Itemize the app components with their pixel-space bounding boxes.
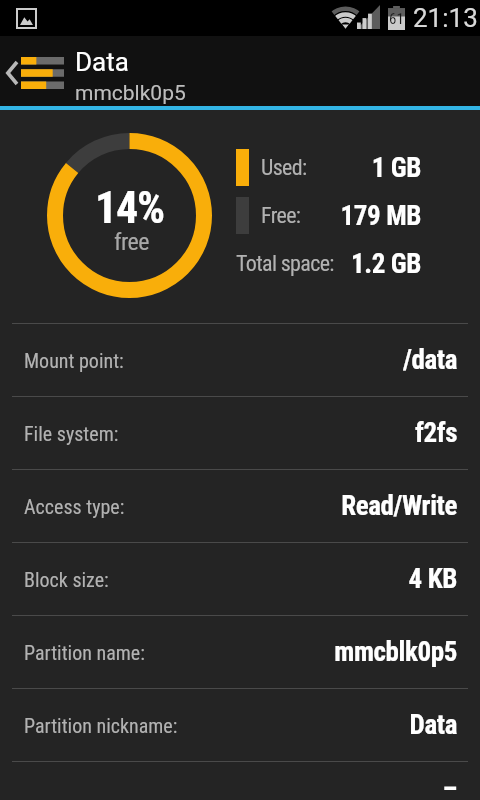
staticText: mmcblk0p5 xyxy=(334,636,457,668)
button[interactable]: Access type: xyxy=(0,470,480,542)
button[interactable]: Partition nickname: xyxy=(0,689,480,761)
staticText: 21:13 xyxy=(413,3,478,33)
staticText: 4 KB xyxy=(408,563,457,595)
staticText: Free: xyxy=(261,203,301,229)
button[interactable]: Data xyxy=(70,36,480,106)
staticText: Read/Write xyxy=(341,490,457,522)
staticText: Data xyxy=(75,47,129,77)
staticText: free xyxy=(114,228,149,256)
staticText: Partition nickname: xyxy=(24,714,178,737)
button[interactable]: Mount point: xyxy=(0,324,480,396)
staticText: Partition name: xyxy=(24,641,145,664)
staticText: 179 MB xyxy=(340,200,421,232)
staticText: 1 GB xyxy=(371,152,421,184)
button[interactable]: File system: xyxy=(0,397,480,469)
staticText: Access type: xyxy=(24,495,125,518)
staticText: 14% xyxy=(95,182,165,234)
staticText: Used: xyxy=(261,155,307,181)
button[interactable]: – xyxy=(0,762,480,800)
staticText: 1.2 GB xyxy=(351,248,421,280)
staticText: Total space: xyxy=(236,251,334,277)
staticText: Block size: xyxy=(24,568,109,591)
staticText: 61 xyxy=(389,10,404,28)
staticText: mmcblk0p5 xyxy=(75,81,186,106)
staticText: Data xyxy=(409,709,457,741)
staticText: File system: xyxy=(24,422,119,445)
button[interactable]: Partition name: xyxy=(0,616,480,688)
staticText: /data xyxy=(402,344,457,376)
staticText: – xyxy=(442,773,457,800)
staticText: Mount point: xyxy=(24,349,124,372)
staticText: f2fs xyxy=(414,417,457,449)
button[interactable]: Navigate up xyxy=(0,36,70,106)
button[interactable]: Block size: xyxy=(0,543,480,615)
